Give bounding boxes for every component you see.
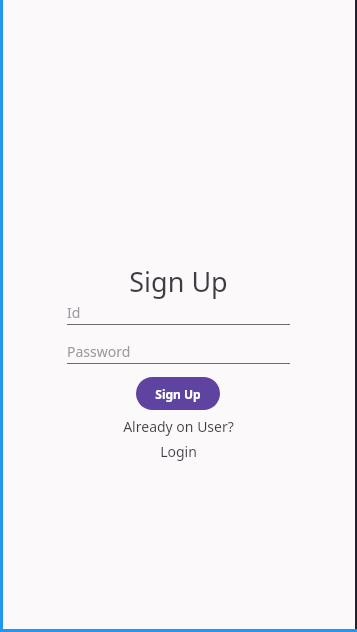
staticText: Login [160, 442, 197, 461]
staticText: Sign Up [155, 386, 201, 402]
button[interactable]: Id [67, 303, 290, 325]
staticText: Already on User? [123, 417, 234, 436]
staticText: Id [67, 303, 81, 322]
staticText: Sign Up [129, 263, 228, 300]
button[interactable]: Sign Up [136, 377, 220, 410]
staticText: Password [67, 342, 131, 361]
button[interactable]: Password [67, 342, 290, 364]
button[interactable]: Already on User? [0, 417, 357, 461]
